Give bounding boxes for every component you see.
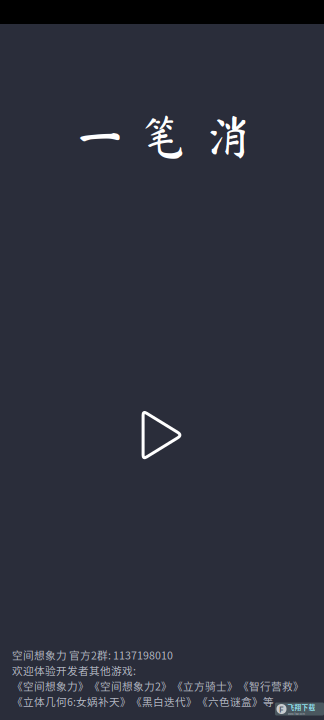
button[interactable]: Play: [140, 408, 184, 462]
staticText: 空间想象力 官方2群: 1137198010: [12, 647, 173, 663]
staticText: www.fxxz.com: [287, 712, 304, 716]
staticText: 《空间想象力》《空间想象力2》《立方骑士》《智行营救》: [12, 678, 304, 693]
staticText: 《立体几何6:女娲补天》《黑白迭代》《六色谜盒》等: [12, 694, 274, 709]
staticText: 欢迎体验开发者其他游戏:: [12, 663, 136, 678]
staticText: 一 笔 消: [76, 113, 251, 159]
staticText: F: [279, 703, 284, 715]
staticText: 飞翔下载: [287, 702, 315, 712]
